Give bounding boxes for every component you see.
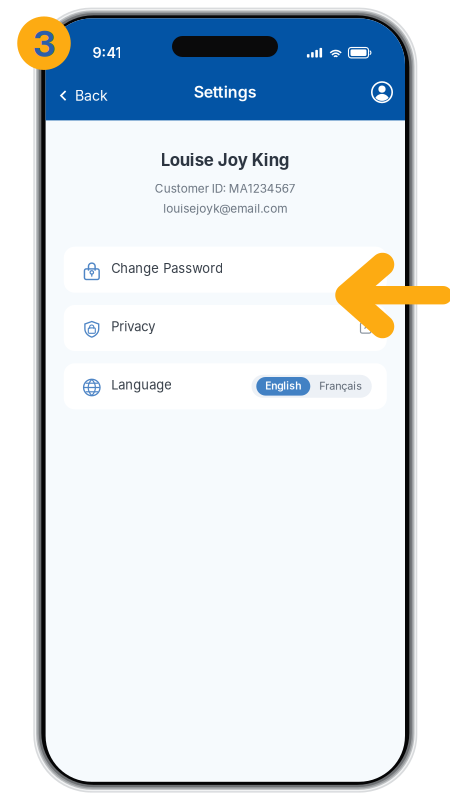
- staticText: Change Password: [111, 260, 223, 276]
- staticText: 9:41: [92, 44, 121, 61]
- staticText: Louise Joy King: [161, 150, 290, 170]
- staticText: Customer ID: MA1234567: [155, 181, 296, 195]
- button[interactable]: Back: [46, 80, 120, 115]
- staticText: Settings: [194, 82, 257, 102]
- staticText: 3: [33, 22, 56, 65]
- staticText: Language: [111, 377, 172, 393]
- button[interactable]: Français: [310, 377, 371, 396]
- button[interactable]: Privacy: [64, 305, 387, 351]
- staticText: Français: [319, 379, 362, 392]
- button[interactable]: English: [256, 377, 310, 396]
- button[interactable]: Account: [359, 79, 405, 116]
- staticText: Privacy: [111, 319, 155, 334]
- button[interactable]: Language: [64, 363, 387, 409]
- staticText: louisejoyk@email.com: [163, 201, 287, 216]
- staticText: Back: [75, 87, 108, 104]
- button[interactable]: Change Password: [64, 247, 387, 293]
- staticText: English: [265, 379, 301, 392]
